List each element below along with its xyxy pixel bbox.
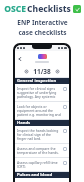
staticText: 11/38 bbox=[33, 67, 51, 76]
staticText: Inspect the hands looking for clinical s… bbox=[17, 128, 61, 141]
button[interactable]: Look for objects or equipment around the… bbox=[15, 102, 69, 119]
staticText: OSCE bbox=[3, 3, 27, 15]
button[interactable]: Info bbox=[55, 69, 60, 74]
staticText: Checklists bbox=[27, 3, 71, 15]
button[interactable]: Inspect for clinical signs suggestive of… bbox=[15, 84, 69, 101]
button[interactable]: Back bbox=[17, 56, 23, 62]
button[interactable]: Inspect the hands looking for clinical s… bbox=[15, 126, 69, 143]
staticText: Assess capillary refill time (CRT). bbox=[17, 160, 61, 169]
staticText: case checklists bbox=[18, 28, 67, 37]
button[interactable]: Reset bbox=[24, 69, 29, 74]
staticText: ENP Interactive bbox=[17, 18, 68, 27]
staticText: Assess and compare the temperature of th… bbox=[17, 146, 61, 155]
button[interactable]: Pulses and blood pressure bbox=[15, 172, 69, 178]
button[interactable]: Assess capillary refill time (CRT). bbox=[15, 158, 69, 171]
button[interactable]: Hands bbox=[15, 120, 69, 126]
staticText: Inspect for clinical signs suggestive of… bbox=[17, 86, 61, 99]
staticText: Hands bbox=[17, 120, 31, 126]
button[interactable]: General inspection bbox=[15, 78, 69, 84]
staticText: Look for objects or equipment around the… bbox=[17, 104, 61, 117]
staticText: General inspection bbox=[17, 78, 57, 84]
staticText: Pulses and blood pressure bbox=[17, 172, 67, 178]
button[interactable]: Assess and compare the temperature of th… bbox=[15, 144, 69, 157]
